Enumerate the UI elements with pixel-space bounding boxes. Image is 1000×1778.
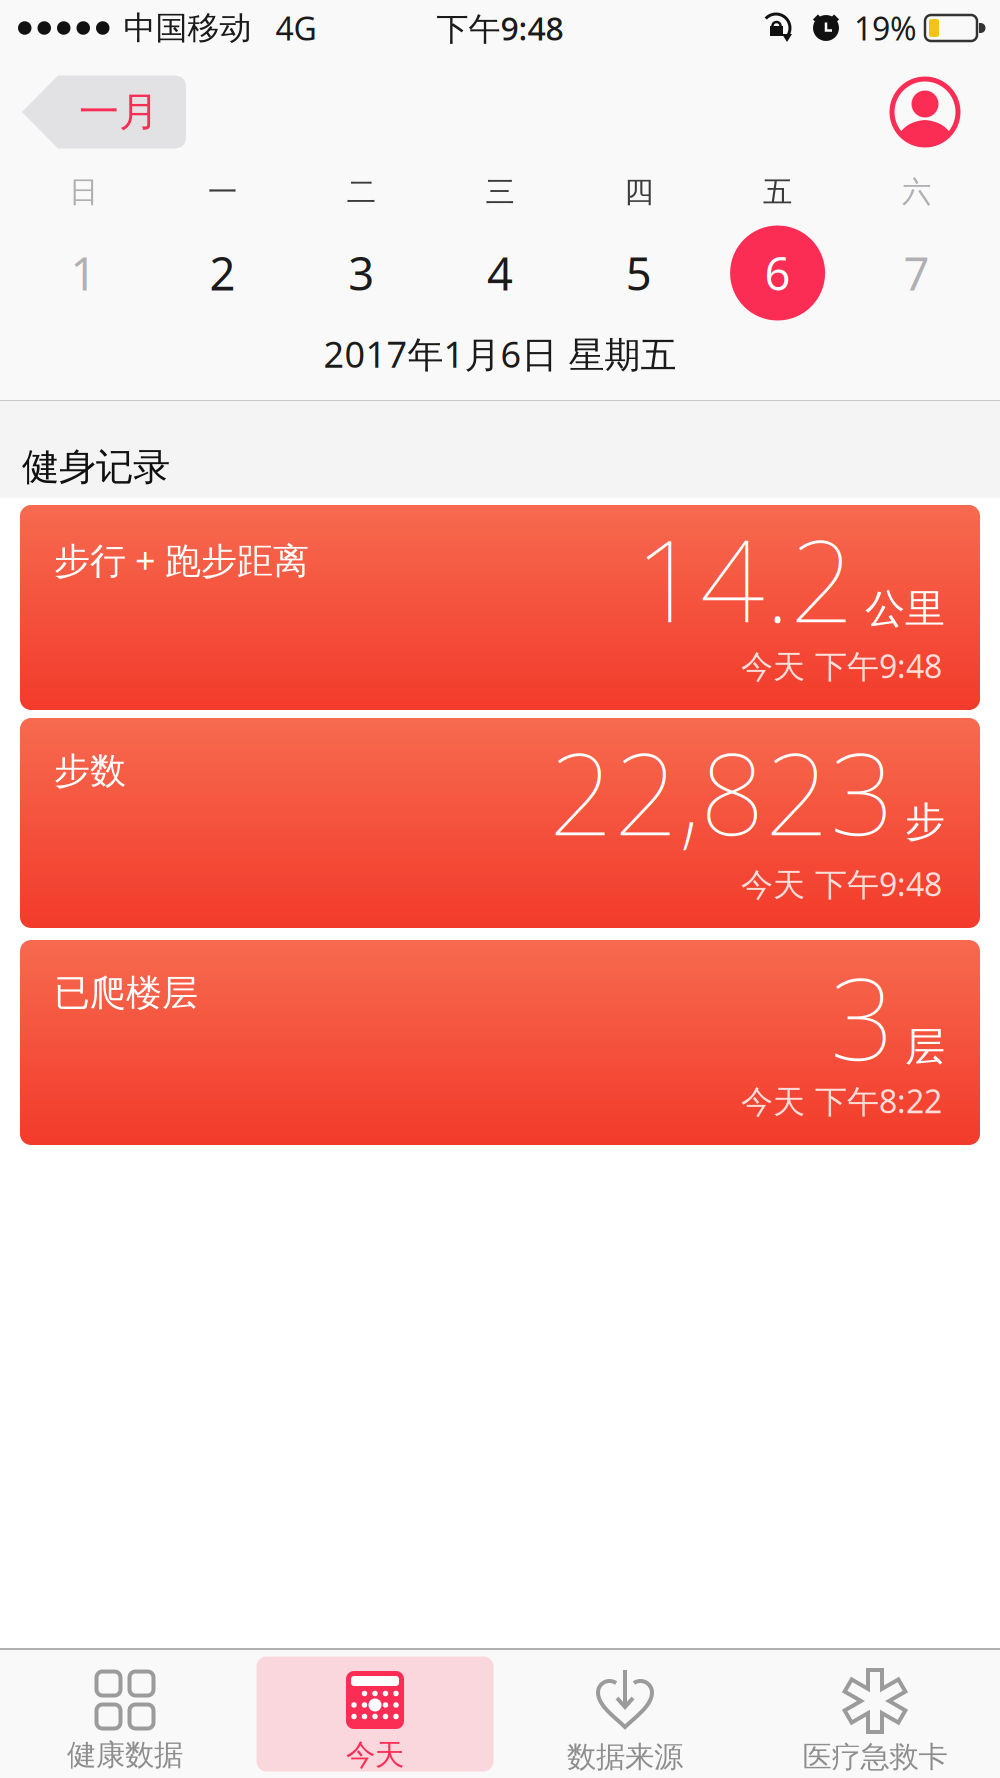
- staticText: 数据来源: [567, 1739, 683, 1775]
- staticText: 4G: [275, 7, 316, 49]
- staticText: 今天: [346, 1737, 404, 1773]
- staticText: 14.2: [635, 503, 855, 653]
- staticText: 1: [71, 243, 97, 303]
- button[interactable]: 已爬楼层: [20, 940, 980, 1145]
- staticText: 二: [347, 174, 376, 210]
- staticText: 22,823: [549, 716, 895, 866]
- button[interactable]: 一月: [22, 75, 186, 148]
- staticText: 层: [905, 1022, 945, 1071]
- staticText: 2017年1月6日 星期五: [323, 330, 676, 378]
- button[interactable]: [892, 79, 958, 145]
- staticText: 健康数据: [67, 1737, 183, 1773]
- staticText: 公里: [865, 584, 945, 633]
- staticText: 四: [624, 174, 653, 210]
- staticText: 今天 下午8:22: [741, 1079, 942, 1122]
- staticText: 3: [830, 941, 895, 1091]
- staticText: 19%: [854, 7, 917, 49]
- button[interactable]: 今天: [250, 1650, 500, 1778]
- button[interactable]: 3: [292, 216, 431, 330]
- staticText: 医疗急救卡: [802, 1739, 947, 1775]
- button[interactable]: 2: [153, 216, 292, 330]
- button[interactable]: 1: [14, 216, 153, 330]
- staticText: 4: [487, 243, 513, 303]
- staticText: 7: [903, 243, 929, 303]
- staticText: 中国移动: [123, 8, 251, 48]
- staticText: 六: [902, 174, 931, 210]
- staticText: 步行 + 跑步距离: [54, 536, 309, 584]
- button[interactable]: 步行 + 跑步距离: [20, 505, 980, 710]
- staticText: 3: [348, 243, 374, 303]
- button[interactable]: 步数: [20, 718, 980, 928]
- staticText: 三: [485, 174, 514, 210]
- button[interactable]: 5: [569, 216, 708, 330]
- button[interactable]: 数据来源: [500, 1650, 750, 1778]
- staticText: 一月: [79, 87, 159, 136]
- button[interactable]: 4: [431, 216, 569, 330]
- staticText: 今天 下午9:48: [741, 862, 942, 905]
- staticText: 步: [905, 797, 945, 846]
- button[interactable]: 7: [847, 216, 986, 330]
- staticText: 步数: [54, 749, 126, 793]
- button[interactable]: 6: [708, 216, 847, 330]
- staticText: 已爬楼层: [54, 971, 198, 1015]
- button[interactable]: 健康数据: [0, 1650, 250, 1778]
- button[interactable]: 医疗急救卡: [750, 1650, 1000, 1778]
- staticText: 今天 下午9:48: [741, 644, 942, 687]
- staticText: 6: [765, 243, 791, 303]
- staticText: 健身记录: [22, 444, 170, 490]
- staticText: 五: [763, 174, 792, 210]
- staticText: 2: [209, 243, 235, 303]
- staticText: 下午9:48: [436, 7, 563, 49]
- staticText: 日: [69, 174, 98, 210]
- staticText: 5: [626, 243, 652, 303]
- staticText: 一: [208, 174, 237, 210]
